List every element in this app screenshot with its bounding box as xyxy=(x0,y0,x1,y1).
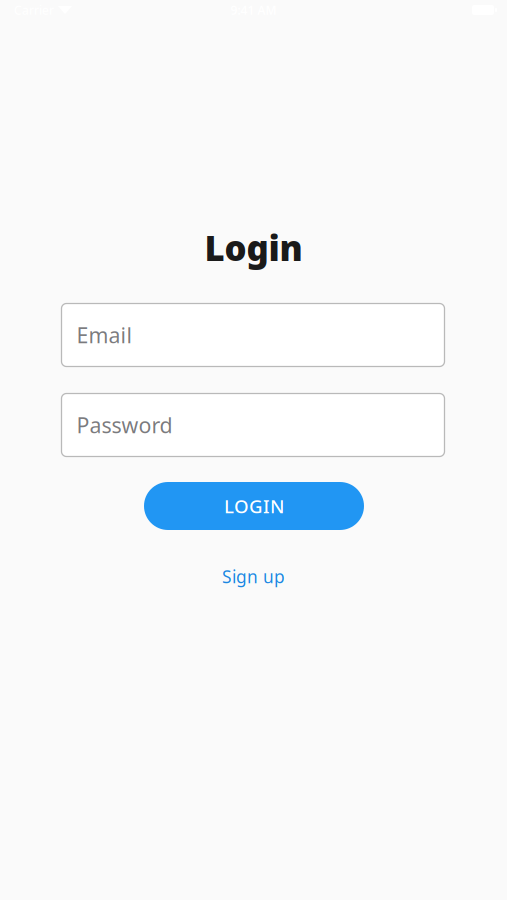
staticText: Password xyxy=(76,411,172,439)
staticText: Sign up xyxy=(222,565,285,588)
staticText: Login xyxy=(204,224,302,270)
button[interactable]: LOGIN xyxy=(144,482,364,530)
staticText: Email xyxy=(76,321,132,349)
button[interactable]: Password xyxy=(61,393,444,456)
button[interactable]: Sign up xyxy=(222,565,285,588)
staticText: LOGIN xyxy=(224,494,284,518)
button[interactable]: Email xyxy=(61,303,444,366)
